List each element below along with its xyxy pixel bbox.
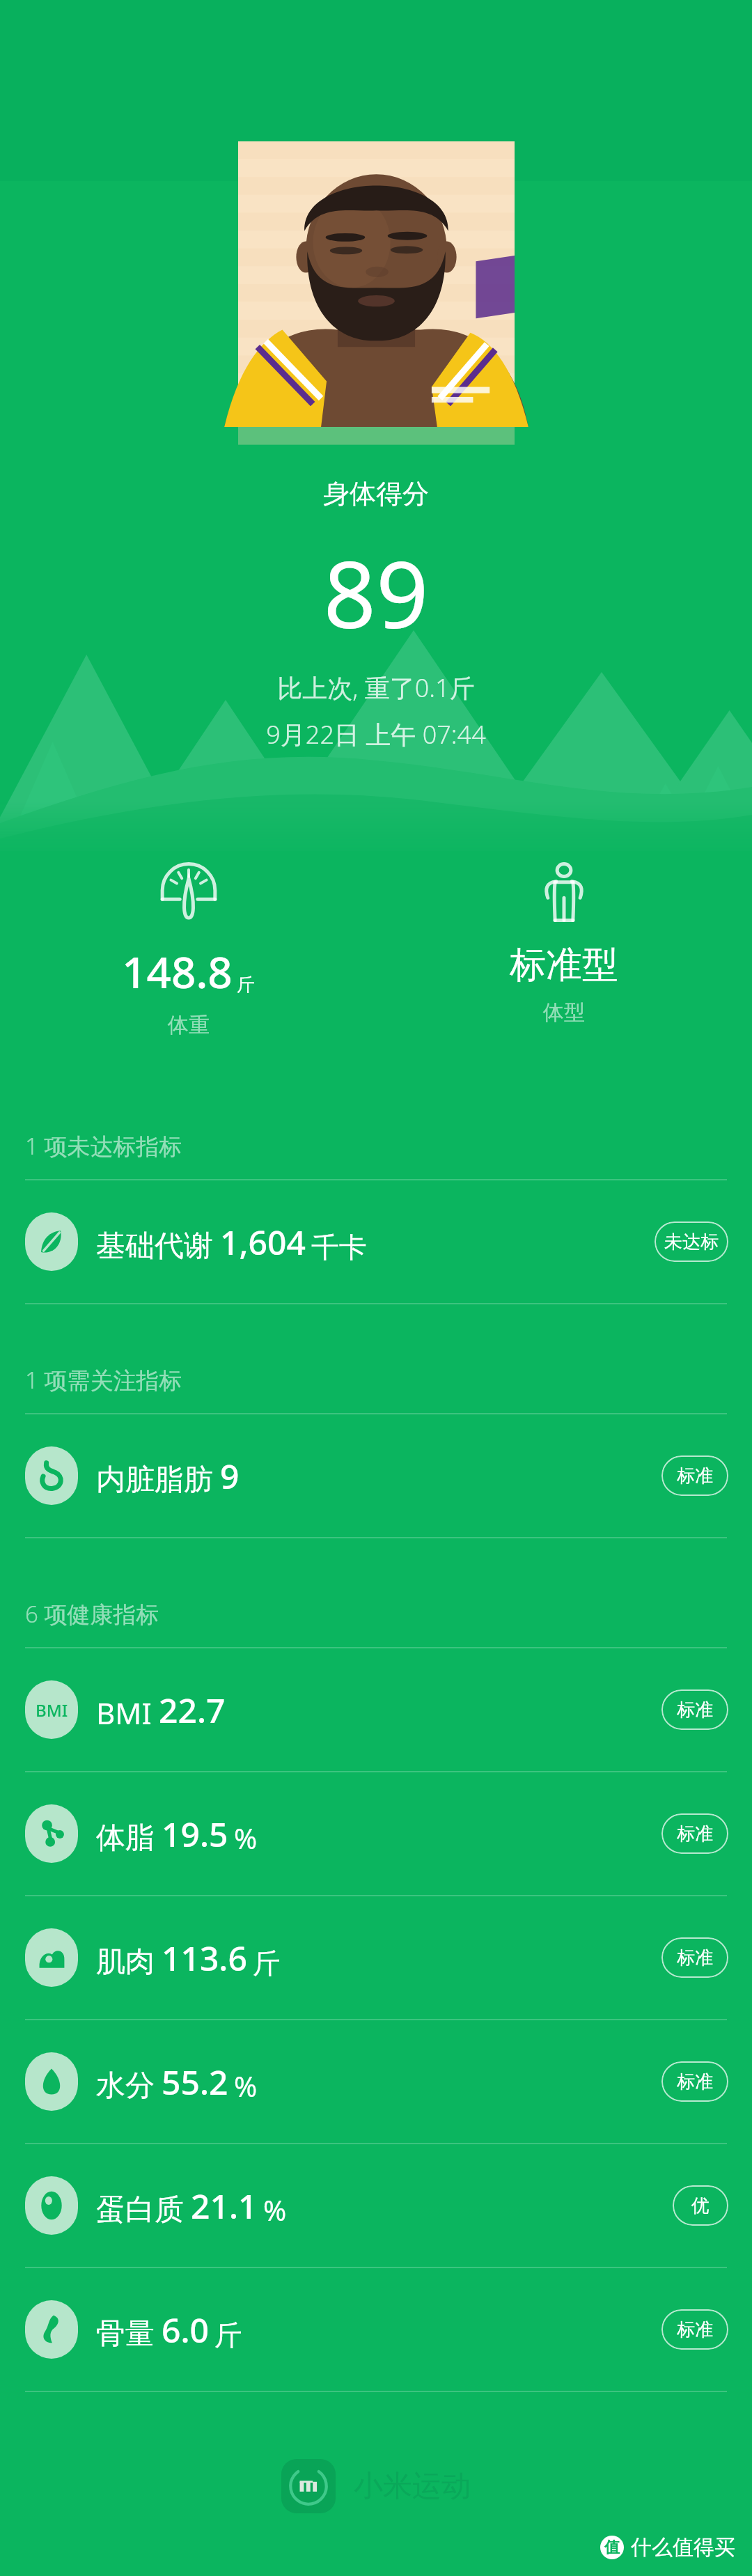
staticText: 蛋白质 [96, 2192, 184, 2228]
staticText: 斤 [214, 2318, 242, 2352]
button[interactable]: 基础代谢 [0, 1180, 752, 1303]
staticText: 身体得分 [0, 477, 752, 510]
staticText: 标准 [677, 2318, 713, 2341]
button[interactable]: 小米运动 [0, 2459, 752, 2513]
button[interactable]: 骨量 [0, 2268, 752, 2391]
staticText: 6 项健康指标 [25, 1598, 159, 1630]
staticText: 斤 [253, 1946, 281, 1981]
staticText: 什么值得买 [631, 2534, 735, 2561]
staticText: 9月22日 上午 07:44 [0, 717, 752, 751]
button[interactable]: 标准 [661, 2061, 728, 2102]
staticText: BMI [36, 1699, 68, 1722]
button[interactable]: 未达标 [655, 1221, 728, 1262]
staticText: 6.0 [162, 2307, 209, 2352]
staticText: 1 项需关注指标 [25, 1364, 182, 1396]
staticText: 89 [0, 530, 752, 655]
button[interactable]: 标准 [661, 1455, 728, 1496]
staticText: 骨量 [96, 2316, 155, 2352]
staticText: 未达标 [664, 1231, 719, 1254]
staticText: 肌肉 [96, 1944, 155, 1981]
staticText: 标准型 [510, 942, 618, 988]
button[interactable]: 标准 [661, 1689, 728, 1730]
button[interactable]: Body type [496, 857, 632, 1030]
staticText: 内脏脂肪 [96, 1462, 213, 1499]
button[interactable]: 肌肉 [0, 1896, 752, 2019]
button[interactable]: 水分 [0, 2020, 752, 2143]
button[interactable]: 标准 [661, 2309, 728, 2350]
staticText: 标准 [677, 2070, 713, 2093]
staticText: 千卡 [311, 1230, 367, 1265]
staticText: 体脂 [96, 1820, 155, 1857]
button[interactable]: 标准 [661, 1813, 728, 1854]
staticText: % [234, 2067, 258, 2105]
staticText: 9 [220, 1453, 240, 1499]
button[interactable]: 蛋白质 [0, 2144, 752, 2267]
staticText: 基础代谢 [96, 1228, 213, 1265]
button[interactable]: 标准 [661, 1937, 728, 1978]
staticText: 体重 [168, 1012, 210, 1038]
staticText: 22.7 [159, 1687, 226, 1733]
staticText: 值 [604, 2538, 620, 2557]
staticText: 1 项未达标指标 [25, 1130, 182, 1162]
button[interactable]: BMI [0, 1648, 752, 1771]
staticText: 标准 [677, 1465, 713, 1488]
staticText: 优 [691, 2194, 710, 2217]
button[interactable]: 内脏脂肪 [0, 1414, 752, 1537]
staticText: 1,604 [220, 1219, 306, 1265]
staticText: BMI [96, 1693, 152, 1733]
staticText: % [234, 1819, 258, 1857]
staticText: 水分 [96, 2068, 155, 2105]
staticText: 斤 [237, 974, 255, 997]
staticText: % [263, 2191, 287, 2228]
staticText: 标准 [677, 1822, 713, 1845]
staticText: 21.1 [191, 2183, 258, 2228]
staticText: 小米运动 [354, 2468, 471, 2505]
staticText: 体型 [543, 999, 585, 1026]
staticText: 19.5 [162, 1811, 228, 1857]
staticText: 113.6 [162, 1935, 247, 1981]
staticText: 比上次, 重了0.1斤 [0, 671, 752, 705]
staticText: 148.8 [122, 942, 233, 1001]
button[interactable]: 优 [673, 2185, 728, 2226]
button[interactable]: Weight [108, 857, 269, 1043]
staticText: 标准 [677, 1699, 713, 1722]
staticText: 标准 [677, 1946, 713, 1969]
button[interactable]: Profile photo [238, 141, 515, 427]
button[interactable]: 体脂 [0, 1772, 752, 1895]
staticText: 55.2 [162, 2059, 228, 2105]
